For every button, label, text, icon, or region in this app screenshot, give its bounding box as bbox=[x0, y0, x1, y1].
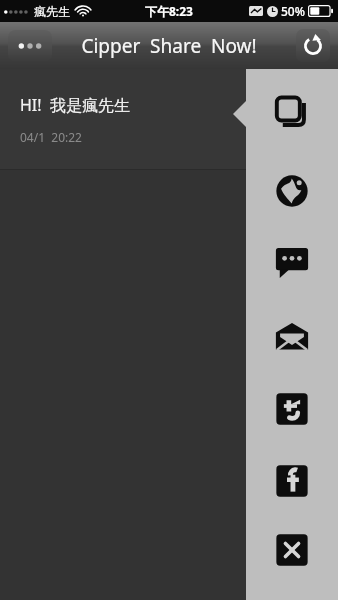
staticText: 04/1 20:22 bbox=[20, 129, 82, 145]
button[interactable]: Facebook bbox=[246, 455, 338, 507]
button[interactable]: More options bbox=[8, 30, 52, 61]
staticText: 50% bbox=[281, 3, 305, 19]
button[interactable]: Copy bbox=[246, 88, 338, 140]
button[interactable]: Twitter bbox=[246, 383, 338, 435]
button[interactable]: Open in browser bbox=[246, 165, 338, 217]
staticText: HI! 我是瘋先生 bbox=[20, 94, 130, 116]
staticText: 下午8:23 bbox=[145, 3, 193, 19]
button[interactable]: Message bbox=[246, 235, 338, 287]
button[interactable]: Close bbox=[246, 524, 338, 576]
button[interactable]: HI! 我是瘋先生 bbox=[0, 69, 338, 169]
button[interactable]: Refresh bbox=[296, 29, 330, 62]
staticText: Cipper Share Now! bbox=[81, 33, 257, 59]
staticText: 瘋先生 bbox=[34, 4, 70, 19]
button[interactable]: Email bbox=[246, 311, 338, 363]
